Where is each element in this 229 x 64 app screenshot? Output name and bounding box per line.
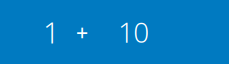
staticText: +: [76, 18, 88, 46]
staticText: 10: [118, 13, 149, 51]
staticText: 1: [43, 12, 60, 51]
button[interactable]: Add: [76, 18, 88, 46]
